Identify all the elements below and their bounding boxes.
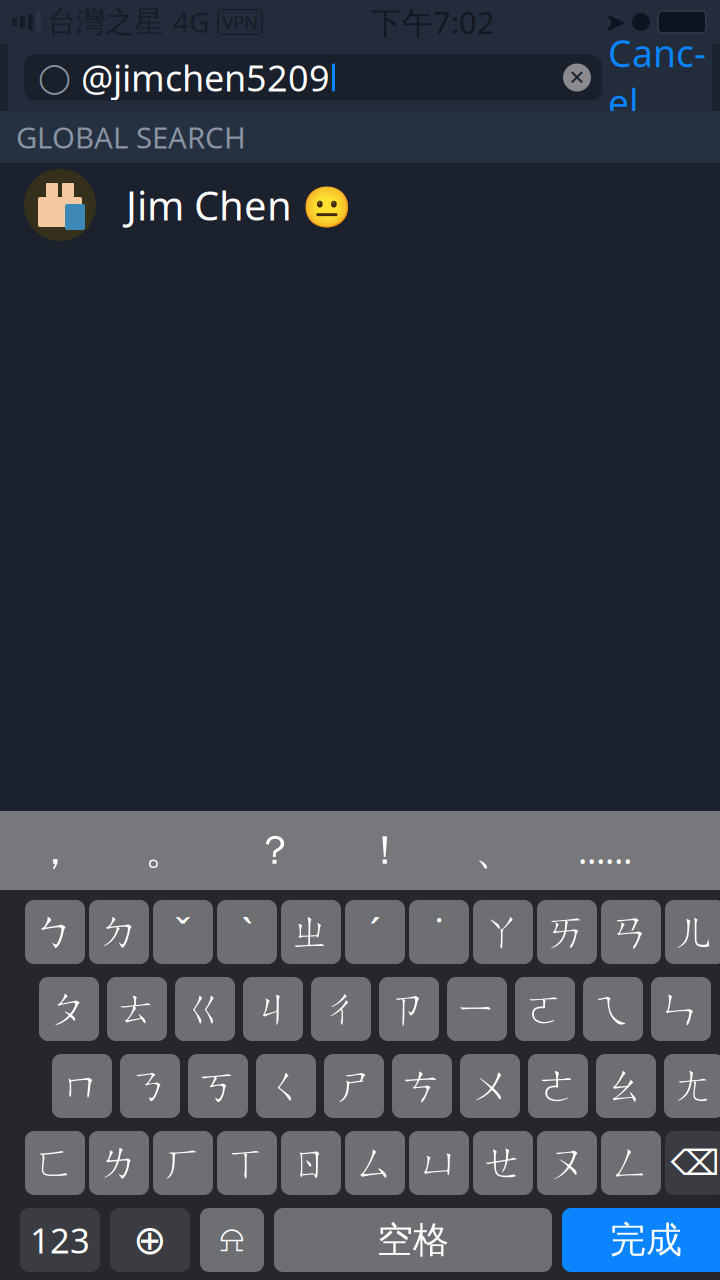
staticText: VPN (222, 10, 258, 34)
button[interactable]: Delete (665, 1131, 720, 1195)
button[interactable]: ㄊ (107, 977, 167, 1041)
button[interactable]: ㄜ (528, 1054, 588, 1118)
button[interactable]: ㄞ (537, 900, 597, 964)
button[interactable]: ㄍ (175, 977, 235, 1041)
button[interactable]: ㄥ (601, 1131, 661, 1195)
staticText: ㄩ (419, 1138, 459, 1187)
staticText: ㄡ (547, 1138, 587, 1187)
button[interactable]: ㄠ (596, 1054, 656, 1118)
staticText: 台灣之星 (47, 4, 163, 40)
staticText: 123 (30, 1217, 90, 1263)
button[interactable]: ㄖ (281, 1131, 341, 1195)
button[interactable]: ㄡ (537, 1131, 597, 1195)
button[interactable]: ㄓ (281, 900, 341, 964)
staticText: ㄎ (198, 1061, 238, 1110)
button[interactable]: ㄎ (188, 1054, 248, 1118)
button[interactable]: ㄕ (324, 1054, 384, 1118)
button[interactable]: ㄨ (460, 1054, 520, 1118)
staticText: GLOBAL SEARCH (16, 117, 246, 156)
staticText: ㄆ (49, 984, 89, 1033)
button[interactable]: 完成 (562, 1208, 720, 1272)
staticText: ㄋ (130, 1061, 170, 1110)
button[interactable]: ㄌ (89, 1131, 149, 1195)
staticText: ⊕ (133, 1217, 167, 1263)
staticText: ㄛ (525, 984, 565, 1033)
staticText: ㄌ (99, 1138, 139, 1187)
button[interactable]: ㄇ (52, 1054, 112, 1118)
button[interactable]: ㄚ (473, 900, 533, 964)
staticText: ㄤ (674, 1061, 714, 1110)
button[interactable]: 。 (110, 811, 220, 890)
button[interactable]: ㄔ (311, 977, 371, 1041)
staticText: ㄦ (675, 907, 715, 956)
staticText: 4G (173, 3, 209, 41)
staticText: ㄇ (62, 1061, 102, 1110)
button[interactable]: ˋ (217, 900, 277, 964)
staticText: ㄣ (661, 984, 701, 1033)
button[interactable]: ㄘ (392, 1054, 452, 1118)
staticText: 。 (145, 826, 185, 875)
button[interactable]: ， (0, 811, 110, 890)
staticText: 下午7:02 (371, 2, 495, 42)
button[interactable]: 、 (440, 811, 550, 890)
staticText: @jimchen5209 (81, 54, 330, 101)
staticText: ㄑ (266, 1061, 306, 1110)
staticText: ㄧ (457, 984, 497, 1033)
button[interactable]: Cancel (602, 52, 712, 102)
staticText: ㄐ (253, 984, 293, 1033)
button[interactable]: ㄙ (345, 1131, 405, 1195)
staticText: ㄗ (389, 984, 429, 1033)
staticText: ㄝ (483, 1138, 523, 1187)
button[interactable]: ㄩ (409, 1131, 469, 1195)
staticText: ？ (255, 826, 295, 875)
button[interactable]: ㄅ (25, 900, 85, 964)
staticText: ㄠ (606, 1061, 646, 1110)
button[interactable]: ㄐ (243, 977, 303, 1041)
button[interactable]: ㄛ (515, 977, 575, 1041)
staticText: Jim Chen 😐 (126, 178, 352, 231)
staticText: 空格 (377, 1218, 449, 1262)
button[interactable]: ㄝ (473, 1131, 533, 1195)
button[interactable]: Numbers (20, 1208, 100, 1272)
button[interactable]: ㄋ (120, 1054, 180, 1118)
button[interactable]: ㄦ (665, 900, 720, 964)
button[interactable]: ㄑ (256, 1054, 316, 1118)
staticText: ➤ (604, 7, 626, 37)
staticText: ㄓ (291, 907, 331, 956)
button[interactable]: ㄤ (664, 1054, 720, 1118)
staticText: ˋ (241, 905, 252, 958)
button[interactable]: ㄒ (217, 1131, 277, 1195)
button[interactable]: ˙ (409, 900, 469, 964)
staticText: ㄚ (483, 907, 523, 956)
button[interactable]: ㄣ (651, 977, 711, 1041)
button[interactable]: ㄢ (601, 900, 661, 964)
button[interactable]: ㄏ (153, 1131, 213, 1195)
staticText: ˊ (369, 905, 380, 958)
button[interactable]: ㄟ (583, 977, 643, 1041)
button[interactable]: Next keyboard (110, 1208, 190, 1272)
button[interactable]: ㄆ (39, 977, 99, 1041)
staticText: ⍾ (219, 1222, 244, 1258)
button[interactable]: ！ (330, 811, 440, 890)
button[interactable]: ㄉ (89, 900, 149, 964)
button[interactable]: ㄧ (447, 977, 507, 1041)
button[interactable]: ㄗ (379, 977, 439, 1041)
staticText: ㄟ (593, 984, 633, 1033)
staticText: ㄢ (611, 907, 651, 956)
staticText: ㄨ (470, 1061, 510, 1110)
button[interactable]: Dictate (200, 1208, 264, 1272)
button[interactable]: ㄈ (25, 1131, 85, 1195)
staticText: ⌫ (670, 1143, 719, 1183)
button[interactable]: Clear text (554, 54, 600, 100)
staticText: ㄊ (117, 984, 157, 1033)
button[interactable]: ？ (220, 811, 330, 890)
button[interactable]: 空格 (274, 1208, 552, 1272)
staticText: ， (35, 826, 75, 875)
button[interactable]: ˊ (345, 900, 405, 964)
staticText: …… (578, 827, 632, 873)
staticText: ✕ (568, 66, 585, 89)
button[interactable]: ˇ (153, 900, 213, 964)
staticText: ㄘ (402, 1061, 442, 1110)
button[interactable]: Jim Chen 😐 (0, 163, 720, 247)
button[interactable]: …… (550, 811, 660, 890)
